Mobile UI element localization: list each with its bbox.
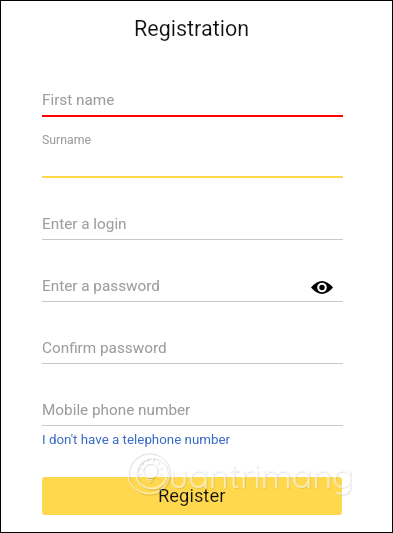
button[interactable]: I don't have a telephone number (42, 432, 231, 448)
staticText: First name (42, 91, 115, 109)
staticText: Enter a password (42, 277, 160, 295)
button[interactable]: Register (42, 477, 342, 515)
button[interactable] (42, 385, 342, 427)
staticText: Confirm password (42, 339, 167, 357)
staticText: Surname (42, 133, 92, 147)
staticText: Registration (134, 16, 250, 41)
button[interactable] (42, 76, 342, 118)
button[interactable]: Show password (307, 273, 337, 301)
button[interactable] (42, 137, 342, 179)
staticText: Mobile phone number (42, 401, 191, 419)
button[interactable] (42, 261, 342, 303)
staticText: uantrimang (170, 455, 355, 498)
button[interactable] (42, 199, 342, 241)
staticText: Enter a login (42, 215, 127, 233)
staticText: uantrimang (169, 454, 354, 497)
button[interactable] (42, 323, 342, 365)
staticText: Register (158, 485, 226, 507)
